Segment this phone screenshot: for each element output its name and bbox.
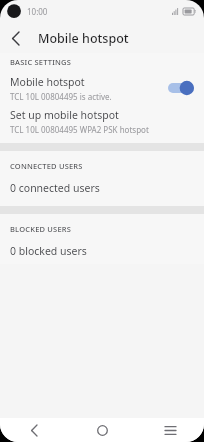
button[interactable]: Back <box>0 23 30 53</box>
staticText: Set up mobile hotspot <box>10 108 119 122</box>
staticText: Mobile hotspot <box>38 30 129 47</box>
staticText: BASIC SETTINGS <box>10 57 72 67</box>
button[interactable]: Recent apps <box>136 418 204 442</box>
staticText: Mobile hotspot <box>10 75 85 89</box>
staticText: TCL 10L 00804495 WPA2 PSK hotspot <box>10 124 149 135</box>
button[interactable]: Set up mobile hotspot <box>0 105 204 137</box>
button[interactable]: Mobile hotspot <box>0 71 204 105</box>
staticText: 0 connected users <box>10 181 100 195</box>
staticText: CONNECTED USERS <box>10 161 83 171</box>
button[interactable]: 0 connected users <box>0 175 204 201</box>
staticText: 10:00 <box>27 6 48 17</box>
button[interactable]: Mobile hotspot toggle <box>168 80 194 96</box>
button[interactable]: Home <box>68 418 136 442</box>
button[interactable]: Back <box>0 418 68 442</box>
button[interactable]: 0 blocked users <box>0 238 204 264</box>
staticText: BLOCKED USERS <box>10 224 72 234</box>
staticText: 0 blocked users <box>10 244 87 258</box>
staticText: TCL 10L 00804495 is active. <box>10 91 112 102</box>
